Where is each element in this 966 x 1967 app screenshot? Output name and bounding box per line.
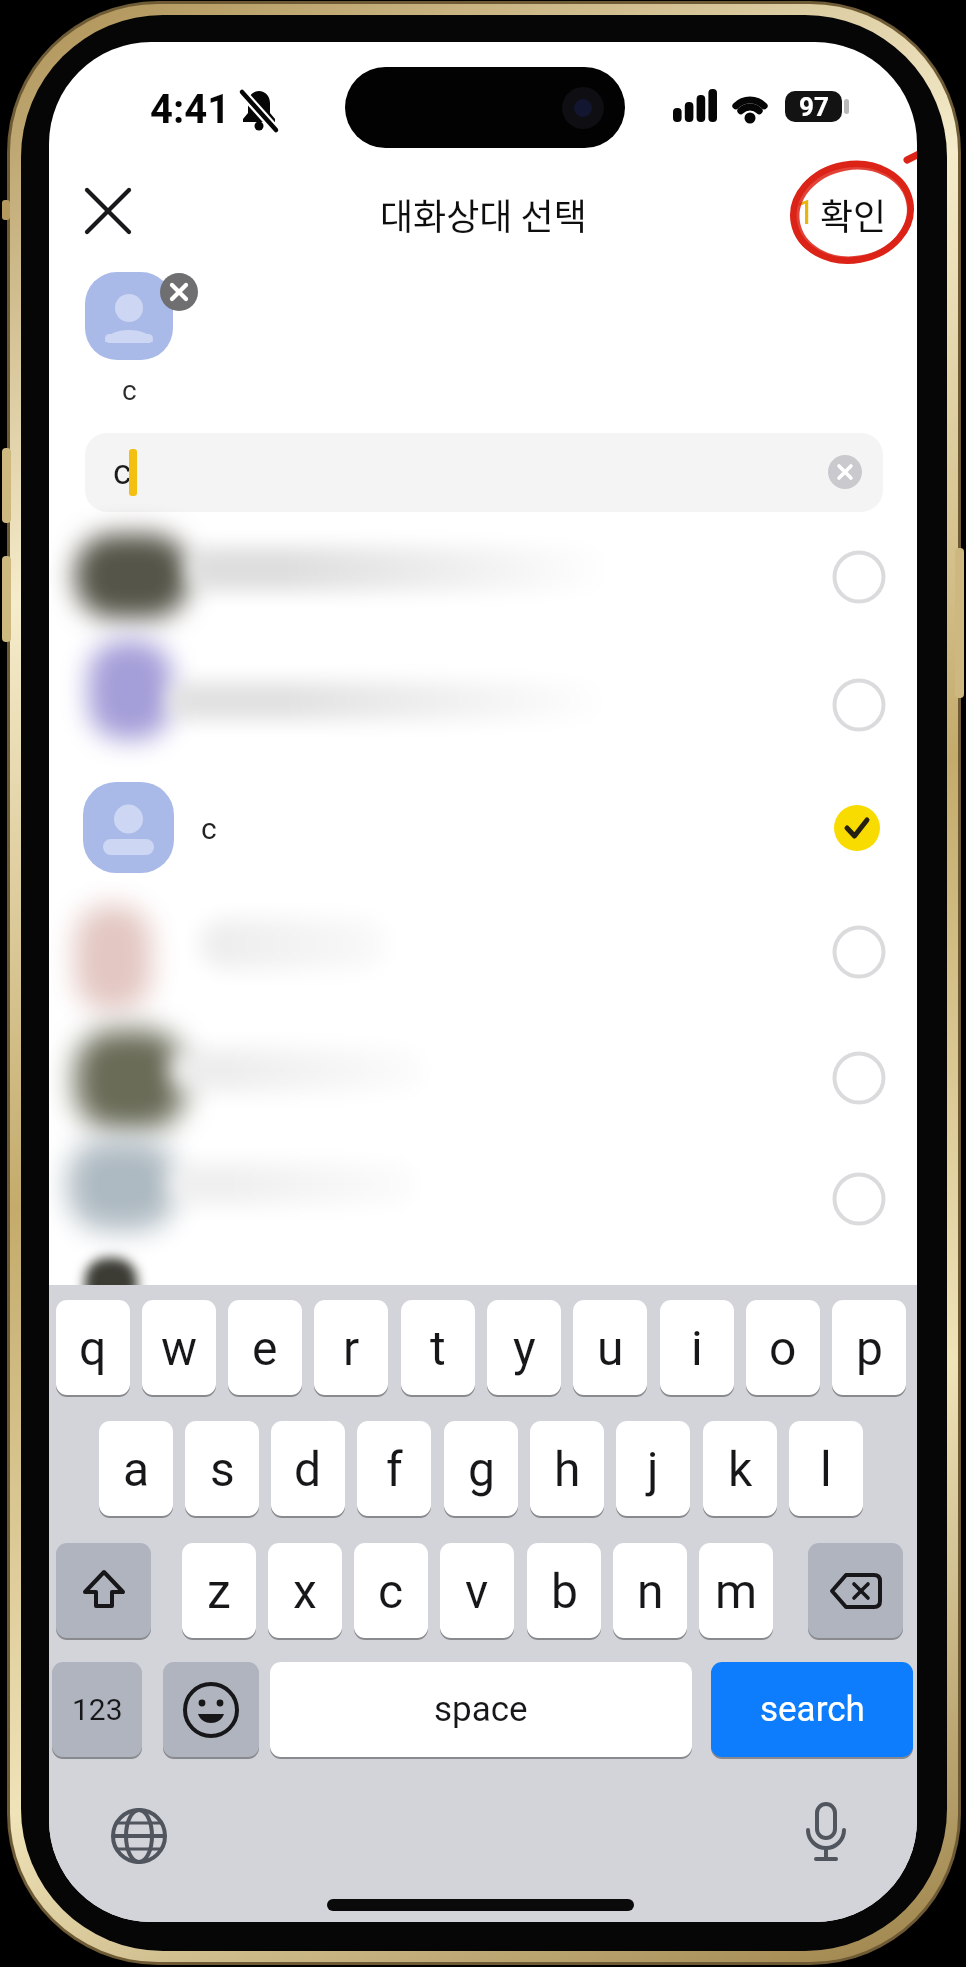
button[interactable]: e	[228, 1300, 302, 1395]
button[interactable]	[831, 1171, 887, 1227]
button[interactable]	[828, 455, 862, 489]
button[interactable]: q	[56, 1300, 130, 1395]
button[interactable]: u	[573, 1300, 647, 1395]
button[interactable]: o	[746, 1300, 820, 1395]
button[interactable]: b	[527, 1543, 601, 1638]
button[interactable]	[796, 1802, 856, 1870]
button[interactable]	[808, 1543, 903, 1638]
staticText: n	[637, 1563, 664, 1619]
button[interactable]: z	[182, 1543, 256, 1638]
staticText: c	[113, 452, 132, 493]
button[interactable]: h	[530, 1421, 604, 1516]
button[interactable]: n	[613, 1543, 687, 1638]
staticText: p	[856, 1320, 883, 1376]
staticText: j	[647, 1441, 659, 1497]
staticText: space	[434, 1689, 528, 1730]
staticText: q	[79, 1320, 107, 1376]
button[interactable]	[831, 549, 887, 605]
button[interactable]: search	[711, 1662, 913, 1757]
staticText: d	[294, 1441, 322, 1497]
staticText: 대화상대 선택	[380, 188, 587, 236]
staticText: z	[207, 1563, 231, 1619]
button[interactable]: x	[268, 1543, 342, 1638]
button[interactable]: t	[401, 1300, 475, 1395]
staticText: c	[122, 374, 137, 407]
staticText: k	[728, 1441, 753, 1497]
staticText: 123	[72, 1692, 123, 1727]
button[interactable]: c	[354, 1543, 428, 1638]
staticText: e	[252, 1320, 278, 1376]
staticText: 확인	[820, 188, 887, 236]
staticText: x	[293, 1563, 317, 1619]
button[interactable]	[831, 924, 887, 980]
button[interactable]	[83, 782, 174, 873]
staticText: l	[820, 1441, 832, 1497]
button[interactable]	[834, 805, 880, 851]
button[interactable]: 123	[52, 1662, 142, 1757]
staticText: r	[343, 1320, 360, 1376]
staticText: w	[161, 1320, 198, 1376]
button[interactable]	[109, 1806, 169, 1866]
staticText: u	[597, 1320, 624, 1376]
staticText: s	[210, 1441, 235, 1497]
button[interactable]	[85, 433, 883, 512]
button[interactable]	[83, 782, 883, 873]
staticText: 97	[799, 92, 829, 122]
button[interactable]: s	[185, 1421, 259, 1516]
button[interactable]: 확인	[813, 188, 893, 236]
staticText: o	[769, 1320, 797, 1376]
button[interactable]: k	[703, 1421, 777, 1516]
button[interactable]: g	[444, 1421, 518, 1516]
button[interactable]	[85, 188, 131, 234]
staticText: c	[378, 1563, 404, 1619]
staticText: m	[715, 1563, 758, 1619]
staticText: g	[468, 1441, 495, 1497]
button[interactable]: w	[142, 1300, 216, 1395]
button[interactable]: m	[699, 1543, 773, 1638]
button[interactable]	[85, 272, 173, 360]
button[interactable]: p	[832, 1300, 906, 1395]
staticText: h	[554, 1441, 581, 1497]
button[interactable]: d	[271, 1421, 345, 1516]
button[interactable]: r	[314, 1300, 388, 1395]
button[interactable]	[163, 1662, 259, 1757]
button[interactable]: j	[616, 1421, 690, 1516]
button[interactable]: y	[487, 1300, 561, 1395]
staticText: f	[386, 1441, 403, 1497]
staticText: i	[691, 1320, 703, 1376]
button[interactable]: i	[660, 1300, 734, 1395]
staticText: y	[513, 1320, 536, 1376]
button[interactable]: l	[789, 1421, 863, 1516]
button[interactable]	[831, 1050, 887, 1106]
button[interactable]	[56, 1543, 151, 1638]
staticText: v	[465, 1563, 489, 1619]
staticText: search	[760, 1689, 865, 1730]
staticText: 1	[796, 192, 814, 232]
staticText: b	[551, 1563, 578, 1619]
staticText: t	[430, 1320, 446, 1376]
button[interactable]	[831, 677, 887, 733]
button[interactable]: a	[99, 1421, 173, 1516]
button[interactable]: f	[357, 1421, 431, 1516]
button[interactable]	[160, 273, 198, 311]
button[interactable]: space	[270, 1662, 692, 1757]
staticText: 4:41	[150, 86, 231, 130]
staticText: a	[123, 1441, 150, 1497]
button[interactable]: v	[440, 1543, 514, 1638]
staticText: c	[201, 811, 217, 846]
